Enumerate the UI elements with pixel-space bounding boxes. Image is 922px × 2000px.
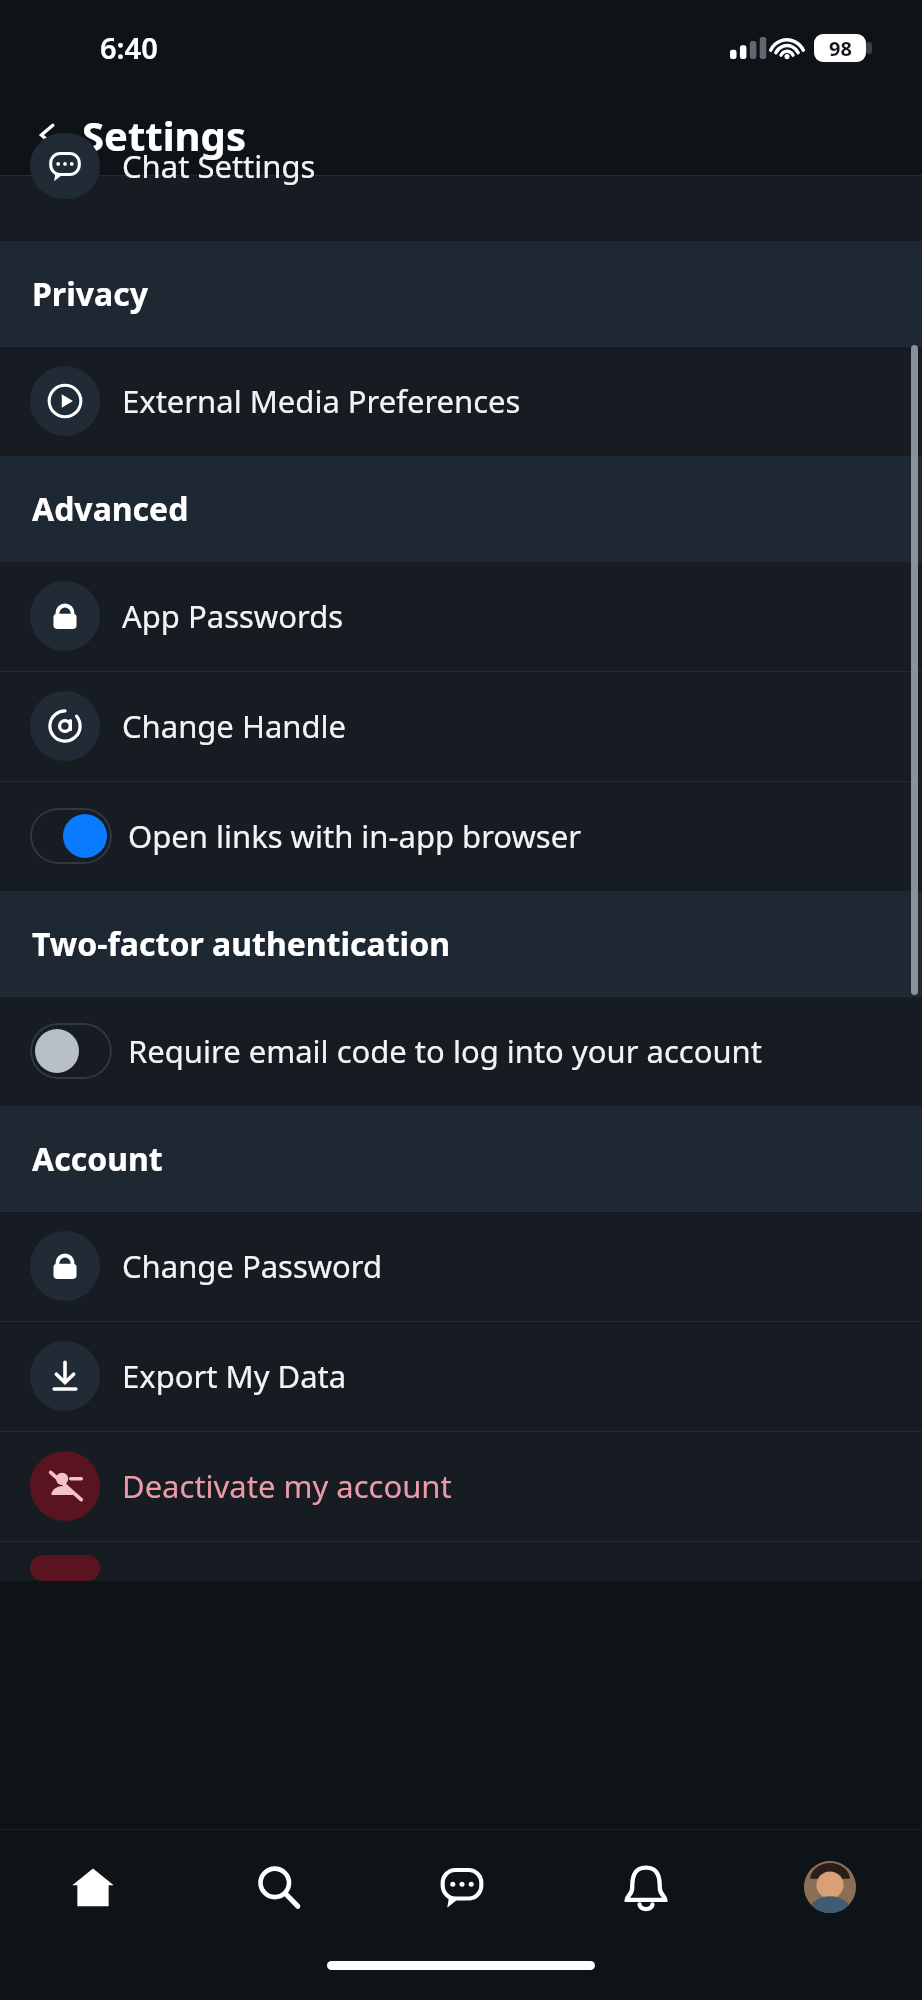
staticText: Open links with in-app browser — [128, 815, 581, 857]
button[interactable]: External Media Preferences — [0, 346, 922, 456]
button[interactable]: Notifications — [554, 1829, 738, 1944]
staticText: App Passwords — [122, 595, 344, 637]
staticText: Privacy — [32, 272, 148, 316]
staticText: Deactivate my account — [122, 1465, 452, 1507]
button[interactable]: Back — [26, 113, 70, 157]
staticText: Account — [32, 1137, 163, 1181]
button[interactable]: App Passwords — [0, 561, 922, 671]
button[interactable]: Profile — [738, 1829, 922, 1944]
button[interactable]: Messages — [370, 1829, 554, 1944]
staticText: Settings — [82, 108, 246, 162]
staticText: 6:40 — [100, 28, 158, 67]
button[interactable]: Open links with in-app browser — [0, 781, 922, 891]
button[interactable]: Export My Data — [0, 1321, 922, 1431]
button[interactable]: Require email code to log into your acco… — [0, 996, 922, 1106]
button[interactable]: Change Handle — [0, 671, 922, 781]
staticText: Export My Data — [122, 1355, 347, 1397]
staticText: Two-factor authentication — [32, 922, 450, 966]
staticText: Chat Settings — [122, 145, 316, 187]
button[interactable]: Change Password — [0, 1211, 922, 1321]
staticText: Require email code to log into your acco… — [128, 1030, 762, 1072]
button[interactable]: Home — [0, 1829, 185, 1944]
staticText: Change Handle — [122, 705, 346, 747]
staticText: 98 — [829, 35, 852, 62]
staticText: Change Password — [122, 1245, 383, 1287]
staticText: Advanced — [32, 487, 189, 531]
button[interactable]: Deactivate my account — [0, 1431, 922, 1541]
button[interactable]: Search — [185, 1829, 370, 1944]
staticText: External Media Preferences — [122, 380, 521, 422]
